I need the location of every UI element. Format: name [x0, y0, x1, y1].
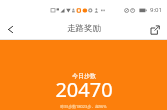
button[interactable]: Back — [0, 19, 20, 39]
staticText: 昨日步数18023步，超96% — [60, 104, 107, 109]
button[interactable]: 今日步数 — [0, 40, 167, 110]
staticText: 走路奖励 — [67, 23, 101, 34]
staticText: 20470 — [55, 76, 113, 103]
staticText: 9:01 — [150, 6, 162, 14]
staticText: 今日步数 — [72, 72, 96, 80]
button[interactable]: Share — [145, 20, 165, 40]
